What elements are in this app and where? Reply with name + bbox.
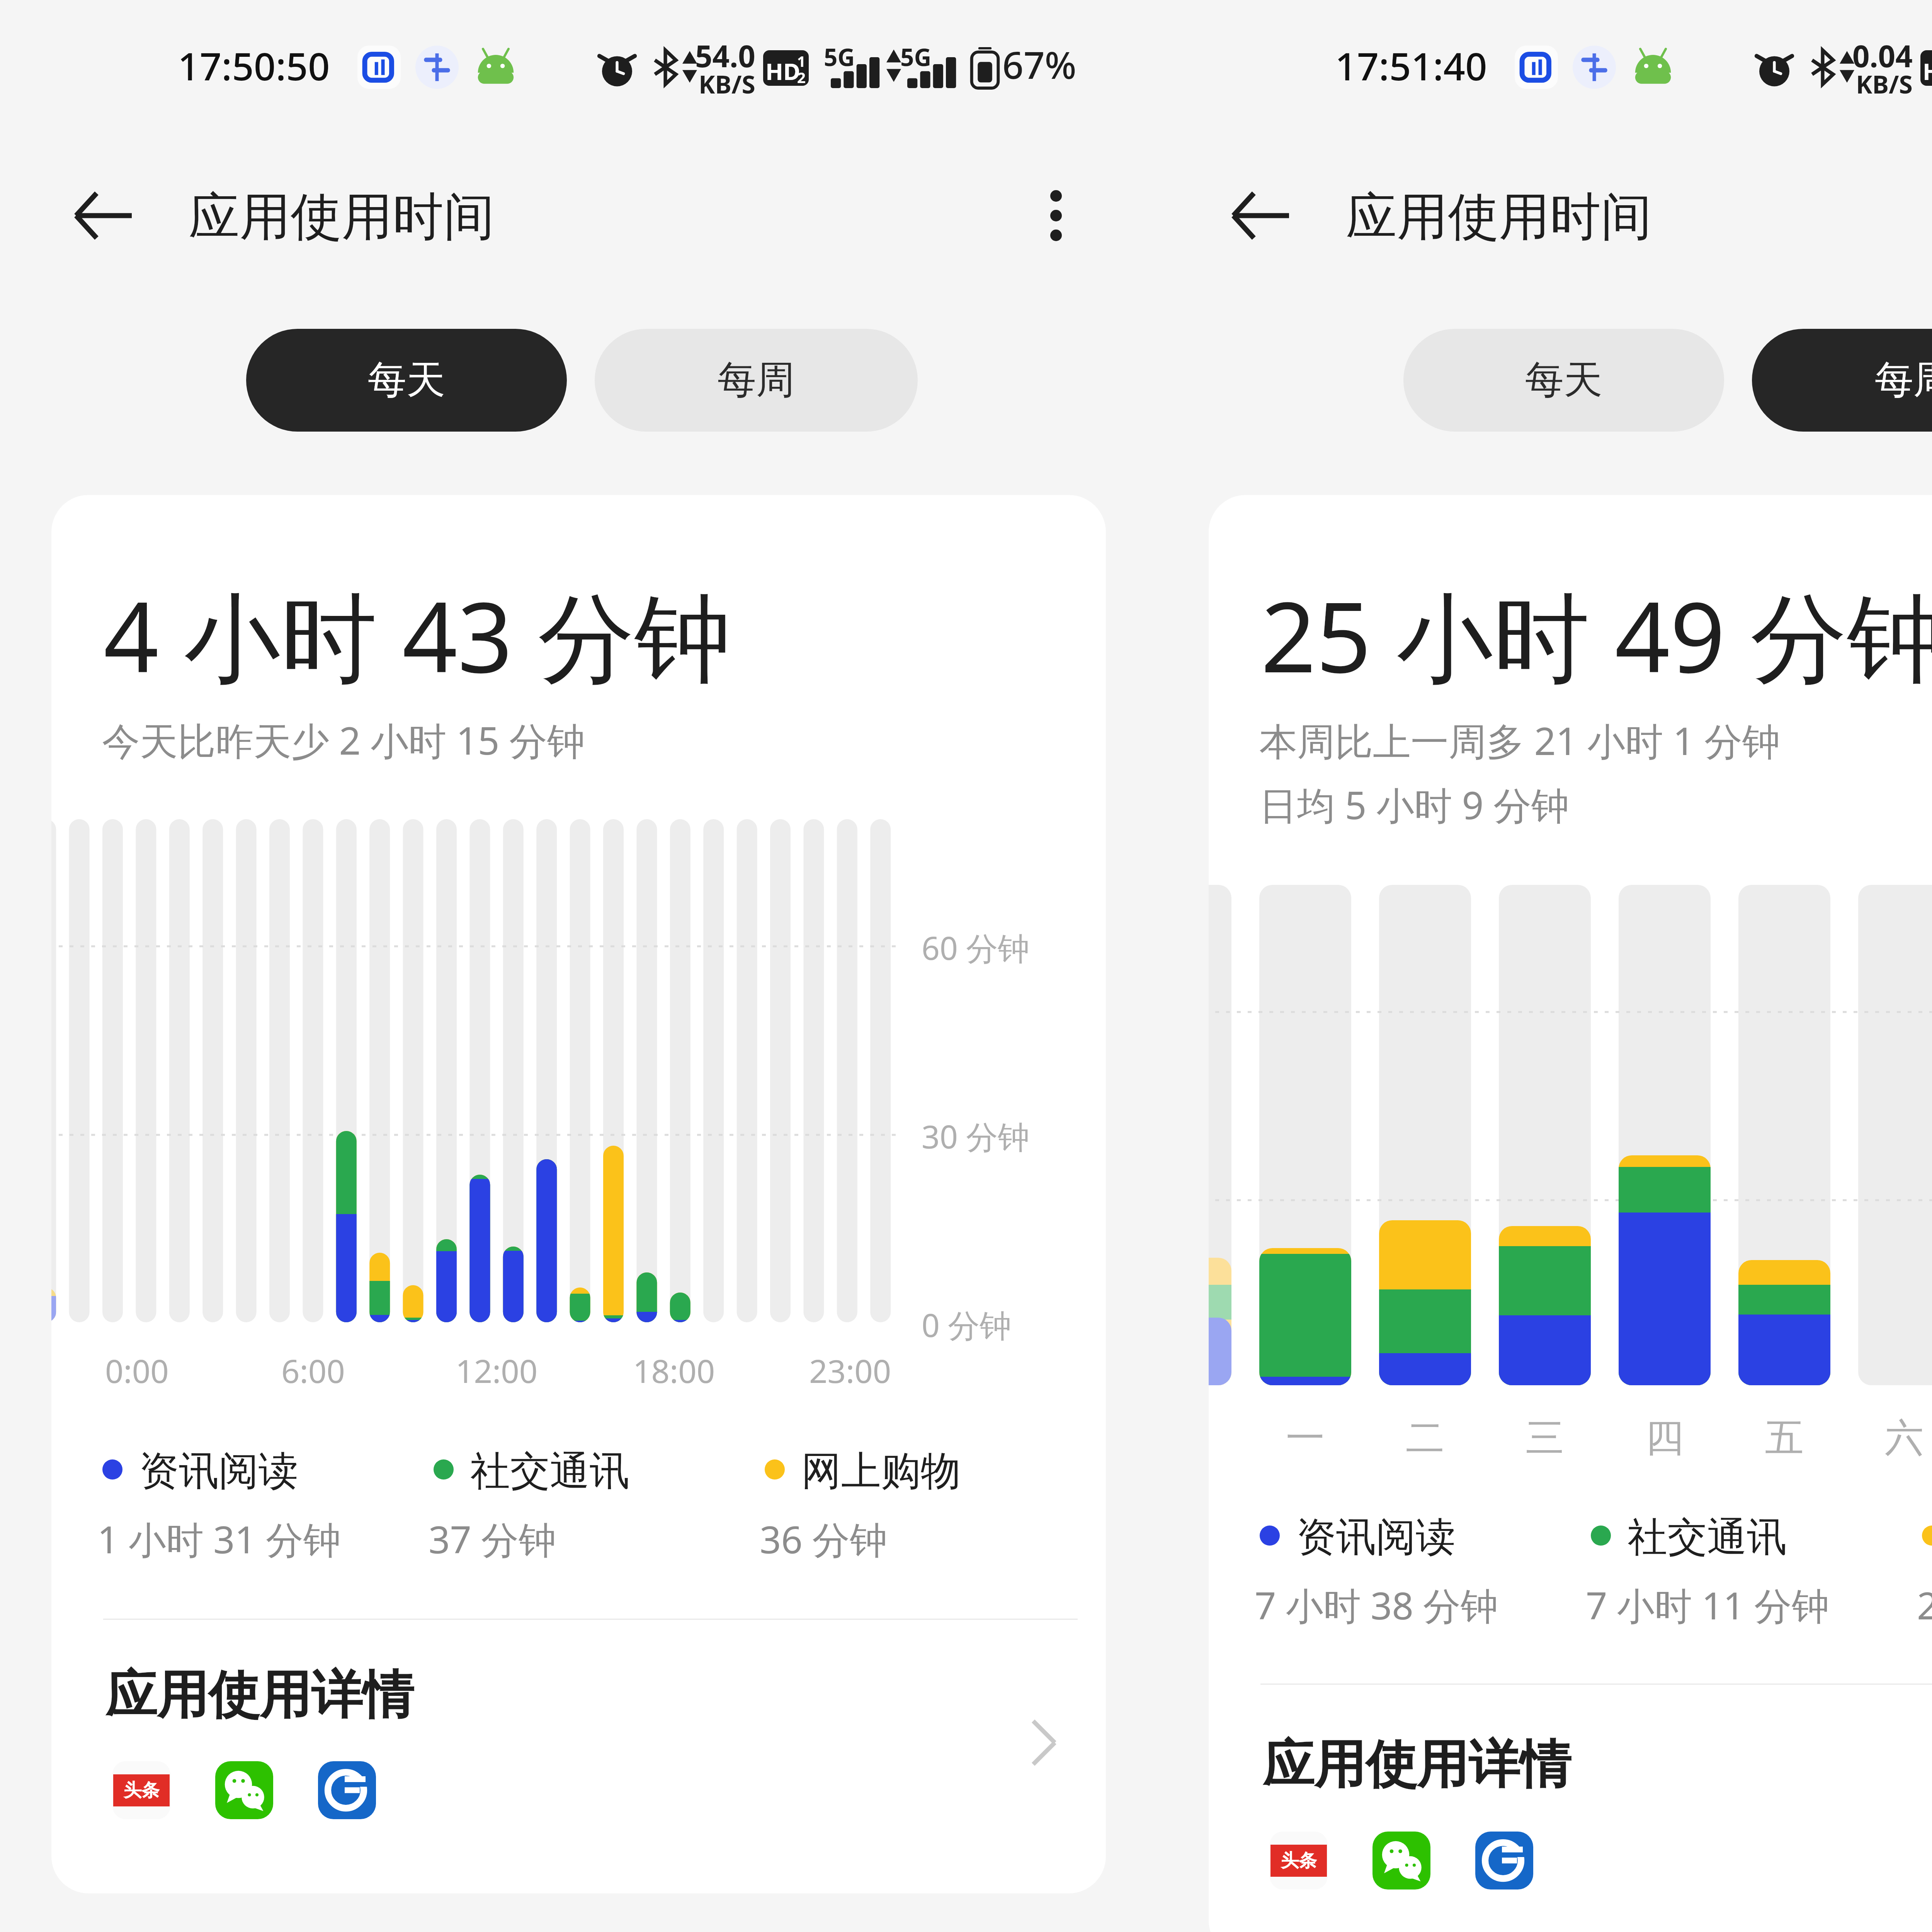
staticText: 资讯阅读 xyxy=(1296,1512,1456,1563)
staticText: 5G xyxy=(824,41,855,73)
staticText: 37 分钟 xyxy=(429,1513,556,1564)
staticText: 6:00 xyxy=(281,1349,345,1392)
staticText: 0.04 xyxy=(1852,35,1913,76)
button[interactable]: 每天 xyxy=(246,329,567,432)
staticText: 25 小时 49 分钟 xyxy=(1261,569,1932,701)
staticText: 二 xyxy=(1406,1414,1444,1463)
button[interactable]: 每周 xyxy=(595,329,918,432)
staticText: 社交通讯 xyxy=(470,1446,629,1497)
staticText: KB/S xyxy=(1856,67,1913,101)
staticText: 应用使用详情 xyxy=(105,1663,414,1728)
staticText: 7 小时 11 分钟 xyxy=(1586,1579,1830,1630)
staticText: 12:00 xyxy=(456,1349,538,1392)
button[interactable]: 应用使用详情 xyxy=(51,1634,1106,1866)
staticText: 30 分钟 xyxy=(922,1114,1030,1158)
staticText: 1 xyxy=(797,51,806,71)
staticText: 0:00 xyxy=(105,1349,169,1392)
staticText: 网上购物 xyxy=(801,1446,961,1497)
staticText: 五 xyxy=(1765,1414,1804,1463)
staticText: 头条 xyxy=(124,1779,160,1802)
staticText: 资讯阅读 xyxy=(139,1446,298,1497)
staticText: 17:50:50 xyxy=(178,39,330,92)
staticText: 5G xyxy=(900,41,932,73)
staticText: 每周 xyxy=(1875,356,1932,405)
staticText: 四 xyxy=(1645,1414,1684,1463)
staticText: 18:00 xyxy=(633,1349,715,1392)
button[interactable]: 每周 xyxy=(1752,329,1932,432)
staticText: 7 小时 38 分钟 xyxy=(1255,1579,1498,1630)
staticText: KB/S xyxy=(699,67,755,101)
staticText: 36 分钟 xyxy=(760,1513,888,1564)
staticText: 应用使用时间 xyxy=(189,185,495,249)
staticText: HD xyxy=(765,55,800,86)
staticText: 头条 xyxy=(1281,1849,1317,1872)
button[interactable]: 返回 xyxy=(1221,173,1306,258)
staticText: 4 小时 43 分钟 xyxy=(104,569,731,701)
staticText: 每天 xyxy=(368,356,445,405)
staticText: 17:51:40 xyxy=(1335,39,1487,92)
button[interactable]: 每天 xyxy=(1403,329,1724,432)
staticText: 今天比昨天少 2 小时 15 分钟 xyxy=(102,714,585,766)
staticText: 2 xyxy=(797,67,806,86)
staticText: 54.0 xyxy=(695,35,755,76)
staticText: HD xyxy=(1923,55,1932,86)
staticText: 三 xyxy=(1526,1414,1564,1463)
staticText: 社交通讯 xyxy=(1628,1512,1787,1563)
staticText: 每天 xyxy=(1525,356,1602,405)
staticText: 23:00 xyxy=(809,1349,891,1392)
button[interactable]: 更多选项 xyxy=(1019,179,1093,252)
staticText: 0 分钟 xyxy=(922,1303,1012,1346)
button[interactable]: 应用使用详情 xyxy=(1209,1700,1932,1932)
staticText: 六 xyxy=(1885,1414,1923,1463)
staticText: 2 小时 47 分钟 xyxy=(1917,1579,1932,1630)
staticText: 1 小时 31 分钟 xyxy=(97,1513,341,1564)
staticText: 应用使用详情 xyxy=(1263,1733,1571,1798)
staticText: 应用使用时间 xyxy=(1346,185,1652,249)
staticText: 每周 xyxy=(718,356,795,405)
staticText: 本周比上一周多 21 小时 1 分钟 xyxy=(1259,714,1781,766)
staticText: 60 分钟 xyxy=(922,926,1030,969)
staticText: 日均 5 小时 9 分钟 xyxy=(1259,779,1570,830)
staticText: 67% xyxy=(1002,39,1077,90)
staticText: 一 xyxy=(1286,1414,1325,1463)
button[interactable]: 返回 xyxy=(64,173,149,258)
